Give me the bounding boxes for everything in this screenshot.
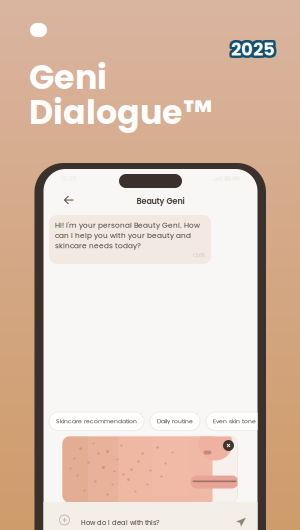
staticText: Beauty Geni bbox=[136, 195, 184, 207]
staticText: 2025 bbox=[229, 38, 273, 64]
staticText: 13:05 bbox=[193, 252, 205, 259]
staticText: 2025 bbox=[233, 35, 277, 61]
button[interactable]: Daily routine bbox=[150, 412, 200, 430]
staticText: 2025 bbox=[229, 34, 273, 60]
button[interactable]: Add attachment bbox=[55, 511, 73, 529]
staticText: 2025 bbox=[233, 37, 277, 63]
button[interactable]: Even skin tone bbox=[206, 412, 263, 430]
staticText: 2025 bbox=[233, 38, 277, 64]
staticText: Hi! I'm your personal Beauty Geni. How c… bbox=[55, 220, 200, 251]
staticText: How do I deal with this? bbox=[81, 518, 159, 527]
staticText: Skincare recommendation bbox=[56, 417, 137, 425]
staticText: Dialogue™ bbox=[29, 89, 212, 136]
staticText: 2025 bbox=[231, 34, 275, 59]
staticText: 2025 bbox=[232, 34, 276, 59]
staticText: 2025 bbox=[229, 36, 273, 62]
button[interactable]: Remove photo bbox=[222, 439, 235, 452]
staticText: 2025 bbox=[231, 36, 275, 62]
staticText: 2025 bbox=[229, 35, 273, 61]
staticText: 2025 bbox=[233, 34, 277, 60]
staticText: 2025 bbox=[230, 34, 274, 59]
staticText: Geni bbox=[29, 54, 107, 101]
staticText: Daily routine bbox=[157, 417, 193, 425]
staticText: 2025 bbox=[233, 36, 277, 62]
staticText: 2025 bbox=[231, 39, 275, 64]
button[interactable]: Skincare recommendation bbox=[49, 412, 144, 430]
staticText: 2025 bbox=[230, 39, 274, 64]
staticText: 2025 bbox=[232, 39, 276, 64]
button[interactable]: Send bbox=[231, 513, 250, 530]
staticText: 13:05 bbox=[60, 174, 76, 183]
button[interactable]: Back bbox=[57, 189, 83, 211]
staticText: 2025 bbox=[229, 37, 273, 63]
staticText: Even skin tone bbox=[213, 417, 256, 425]
